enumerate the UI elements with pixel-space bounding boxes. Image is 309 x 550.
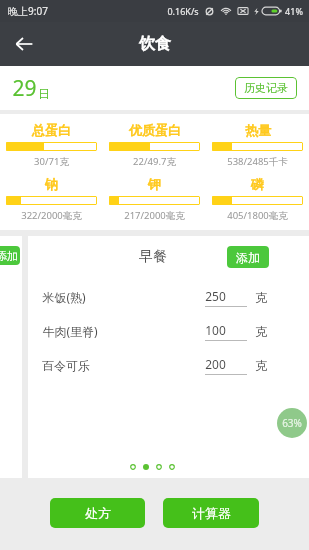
button[interactable]: 牛肉(里脊): [28, 314, 277, 348]
button[interactable]: 百令可乐: [28, 348, 277, 382]
button[interactable]: Back: [6, 26, 42, 62]
staticText: 322/2000毫克: [21, 209, 82, 222]
staticText: 100: [205, 322, 226, 338]
button[interactable]: 处方: [50, 498, 145, 528]
staticText: 30/71克: [34, 155, 69, 168]
button[interactable]: 添加: [0, 246, 20, 265]
staticText: 405/1800毫克: [227, 209, 288, 222]
staticText: 钠: [45, 176, 58, 192]
staticText: 添加: [236, 250, 260, 265]
staticText: 41%: [285, 5, 303, 17]
staticText: 克: [255, 290, 267, 305]
button[interactable]: 米饭(熟): [28, 280, 277, 314]
staticText: 早餐: [139, 248, 167, 266]
button[interactable]: 添加: [227, 246, 269, 268]
staticText: 总蛋白: [32, 122, 71, 138]
button[interactable]: 历史记录: [235, 77, 297, 99]
button[interactable]: 计算器: [163, 498, 259, 528]
staticText: 217/2000毫克: [124, 209, 185, 222]
staticText: 0.16K/s: [167, 5, 199, 17]
staticText: 钾: [148, 176, 161, 192]
staticText: 22/49.7克: [133, 155, 176, 168]
staticText: 29: [12, 74, 37, 103]
staticText: 优质蛋白: [129, 122, 181, 138]
staticText: 磷: [251, 176, 264, 192]
staticText: 计算器: [192, 505, 231, 521]
staticText: 538/2485千卡: [227, 155, 288, 168]
staticText: 晚上9:07: [8, 4, 48, 18]
staticText: 添加: [0, 249, 18, 263]
staticText: 克: [255, 358, 267, 373]
staticText: 250: [205, 288, 226, 304]
button[interactable]: Progress 63 percent: [277, 408, 307, 438]
staticText: 百令可乐: [42, 358, 90, 373]
staticText: 63%: [282, 416, 302, 430]
staticText: 日: [38, 86, 50, 101]
staticText: 历史记录: [244, 81, 288, 95]
staticText: 牛肉(里脊): [42, 323, 98, 339]
staticText: 米饭(熟): [42, 289, 86, 305]
staticText: 200: [205, 356, 226, 372]
staticText: 饮食: [139, 34, 171, 54]
staticText: 克: [255, 324, 267, 339]
staticText: 热量: [245, 122, 271, 138]
staticText: 处方: [85, 505, 111, 521]
